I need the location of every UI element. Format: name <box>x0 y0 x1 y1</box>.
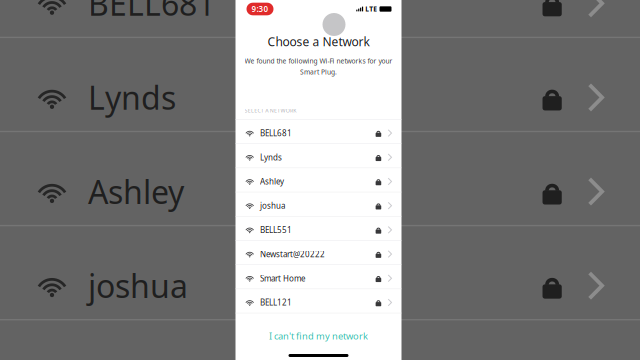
staticText: Lynds <box>88 76 176 119</box>
button[interactable]: BELL121 <box>235 289 401 313</box>
staticText: BELL681 <box>260 128 292 138</box>
staticText: LTE <box>365 5 377 13</box>
staticText: BELL681 <box>88 0 215 25</box>
staticText: Smart Home <box>260 273 306 284</box>
button[interactable]: joshua <box>235 192 401 217</box>
button[interactable]: Ashley <box>235 168 401 192</box>
staticText: 9:30 <box>251 4 268 14</box>
button[interactable]: Newstart@20222 <box>235 241 401 265</box>
staticText: Ashley <box>260 176 284 187</box>
staticText: I can't find my network <box>269 330 368 342</box>
button[interactable]: I can't find my network <box>235 329 401 343</box>
button[interactable]: Smart Home <box>235 265 401 289</box>
button[interactable]: Lynds <box>235 144 401 168</box>
staticText: Lynds <box>260 152 282 163</box>
staticText: Newstart@20222 <box>260 249 325 259</box>
button[interactable]: BELL551 <box>235 217 401 241</box>
staticText: Ashley <box>88 170 184 213</box>
staticText: BELL551 <box>260 225 292 235</box>
staticText: We found the following Wi-Fi networks fo… <box>244 57 392 65</box>
staticText: joshua <box>88 264 188 307</box>
button[interactable]: BELL681 <box>235 120 401 144</box>
staticText: Smart Plug. <box>300 68 337 76</box>
staticText: Choose a Network <box>267 33 369 49</box>
staticText: SELECT A NETWORK <box>244 107 296 114</box>
staticText: BELL121 <box>260 297 292 308</box>
staticText: joshua <box>260 200 285 211</box>
